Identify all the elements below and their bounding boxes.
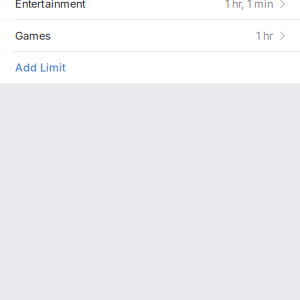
button[interactable]: Add Limit	[0, 52, 300, 83]
button[interactable]: Games	[0, 20, 300, 51]
staticText: Add Limit	[15, 61, 66, 74]
staticText: 1 hr, 1 min	[225, 0, 273, 10]
staticText: Games	[15, 29, 51, 42]
staticText: Entertainment	[15, 0, 86, 10]
staticText: 1 hr	[256, 29, 273, 42]
button[interactable]: Entertainment	[0, 0, 300, 19]
